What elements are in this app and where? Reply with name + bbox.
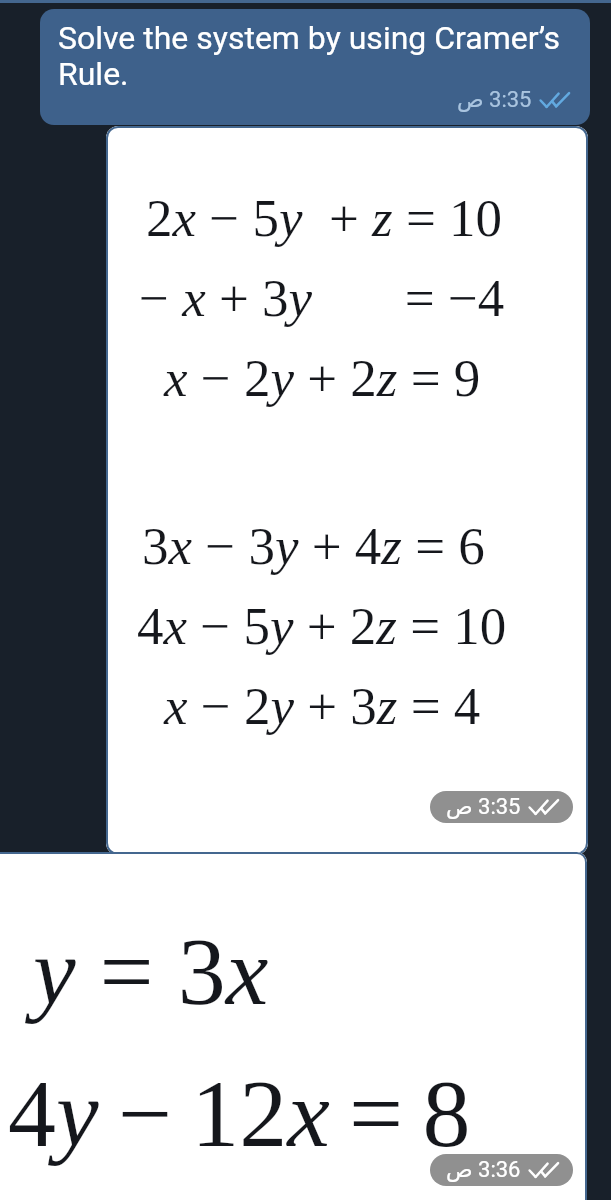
staticText: Solve the system by using Cramer’s Rule. [58,19,570,93]
staticText: ‎ص‎ 3:36 [446,1157,521,1183]
staticText: 3x − 3y + 4z = 6 [142,517,485,576]
staticText: 4x − 5y + 2z = 10 [137,597,507,656]
staticText: 2x − 5y + z = 10 [146,189,503,248]
staticText: ‎ص‎ 3:35 [446,794,521,820]
staticText: x − 2y + 3z = 4 [164,677,481,736]
staticText: 4y − 12x = 8 [8,1060,471,1166]
button[interactable]: y = 3x [0,852,587,1200]
button[interactable]: 2x − 5y + z = 10 [106,126,588,855]
staticText: x − 2y + 2z = 9 [164,349,481,408]
button[interactable]: Solve the system by using Cramer’s Rule. [40,9,590,125]
staticText: ‎ص‎ 3:35 [457,87,532,113]
staticText: y = 3x [33,918,269,1024]
staticText: − x + 3y = −4 [139,269,505,328]
